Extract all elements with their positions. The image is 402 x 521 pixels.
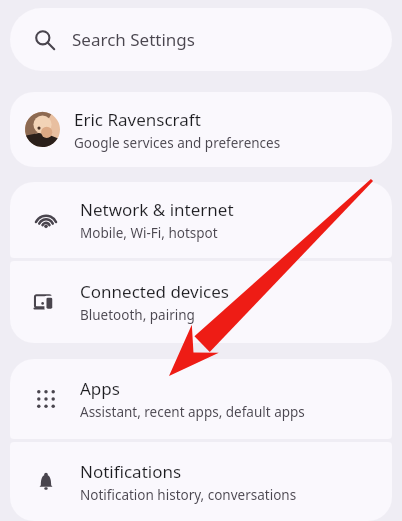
staticText: Apps: [80, 377, 120, 400]
staticText: Assistant, recent apps, default apps: [80, 403, 305, 421]
button[interactable]: Network & internet: [10, 182, 392, 258]
staticText: Network & internet: [80, 198, 234, 221]
staticText: Notification history, conversations: [80, 486, 297, 504]
button[interactable]: Notifications: [10, 442, 392, 521]
staticText: Notifications: [80, 460, 182, 483]
staticText: Bluetooth, pairing: [80, 306, 195, 324]
staticText: Connected devices: [80, 280, 230, 303]
staticText: Google services and preferences: [74, 134, 281, 152]
staticText: Search Settings: [72, 28, 195, 51]
staticText: Mobile, Wi-Fi, hotspot: [80, 224, 218, 242]
button[interactable]: Connected devices: [10, 261, 392, 343]
button[interactable]: Search Settings: [10, 8, 392, 71]
button[interactable]: Eric Ravenscraft: [10, 92, 392, 167]
staticText: Eric Ravenscraft: [74, 108, 201, 131]
button[interactable]: Apps: [10, 359, 392, 439]
